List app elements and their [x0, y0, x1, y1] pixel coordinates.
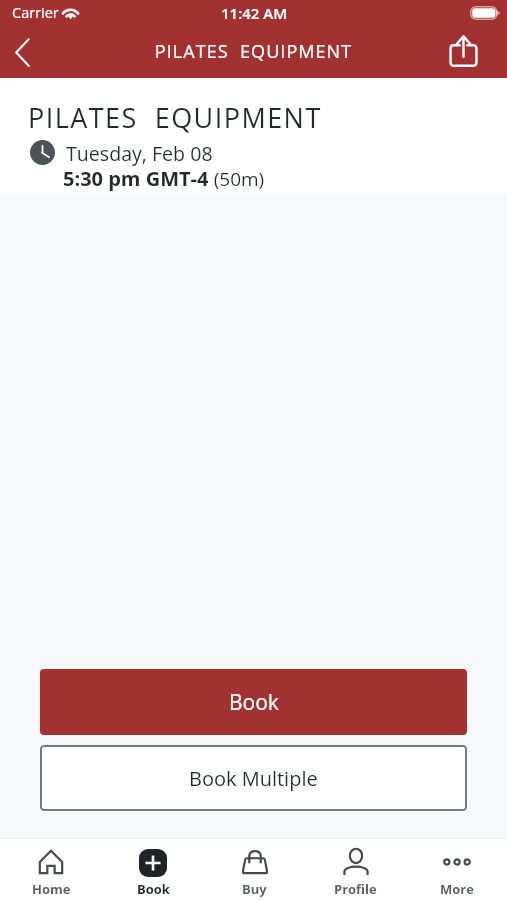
staticText: Book Multiple	[189, 765, 318, 792]
staticText: Tuesday, Feb 08	[66, 140, 213, 167]
button[interactable]: Book Multiple	[40, 745, 467, 811]
staticText: PILATES EQUIPMENT	[28, 99, 322, 136]
staticText: Book	[229, 688, 279, 717]
button[interactable]: More	[406, 838, 507, 900]
button[interactable]: Back	[0, 27, 44, 77]
button[interactable]: Share	[438, 28, 488, 78]
staticText: 11:42 AM	[221, 3, 288, 23]
staticText: Home	[32, 880, 71, 898]
button[interactable]: Buy	[204, 838, 305, 900]
button[interactable]: Profile	[305, 838, 406, 900]
staticText: Buy	[242, 880, 267, 898]
staticText: Profile	[334, 880, 377, 898]
staticText: Carrier	[12, 3, 59, 23]
staticText: 5:30 pm GMT-4 (50m)	[63, 165, 265, 192]
button[interactable]: Book	[40, 669, 467, 735]
staticText: PILATES EQUIPMENT	[0, 39, 507, 64]
staticText: More	[440, 880, 474, 898]
button[interactable]: Book	[102, 838, 204, 900]
button[interactable]: Home	[0, 838, 102, 900]
staticText: Book	[137, 880, 170, 898]
